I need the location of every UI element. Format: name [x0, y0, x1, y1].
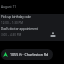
button[interactable]: Pick up birthday cake	[0, 14, 64, 41]
staticText: 12:00 – 1:30 PM	[1, 21, 23, 25]
other: Guests	[50, 32, 56, 38]
button[interactable]: Navigate	[1, 49, 53, 60]
staticText: August 11	[1, 5, 17, 9]
staticText: Dad's doctor appointment	[1, 27, 38, 31]
staticText: 3:00 – 4:30 PM	[1, 33, 22, 37]
staticText: Pick up birthday cake	[1, 15, 31, 19]
staticText: 1055 ft · Charleston Rd	[10, 52, 49, 57]
other: Navigate	[3, 52, 8, 57]
